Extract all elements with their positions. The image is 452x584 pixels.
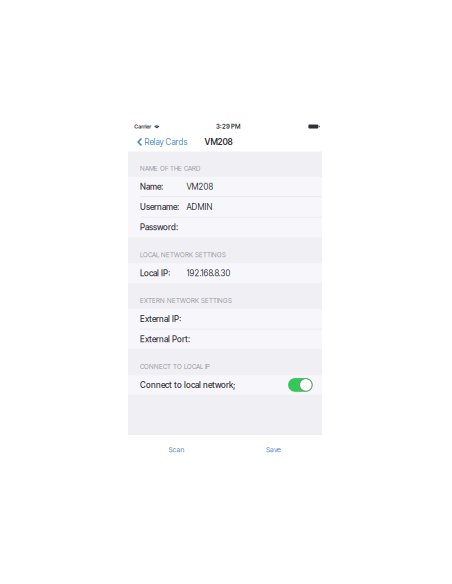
- staticText: External IP:: [140, 314, 181, 324]
- staticText: ADMIN: [187, 202, 213, 212]
- staticText: VM208: [205, 137, 233, 147]
- button[interactable]: Scan: [128, 435, 225, 464]
- staticText: Relay Cards: [145, 137, 188, 147]
- staticText: EXTERN NETWORK SETTINGS: [140, 297, 232, 305]
- button[interactable]: Connect to local network: [288, 378, 313, 392]
- staticText: 3:29 PM: [216, 123, 240, 130]
- button[interactable]: Save: [225, 435, 322, 464]
- staticText: 192.168.8.30: [187, 268, 231, 278]
- button[interactable]: Relay Cards: [128, 134, 190, 150]
- staticText: Local IP:: [140, 268, 170, 278]
- staticText: CONNECT TO LOCAL IP: [140, 363, 210, 370]
- staticText: VM208: [187, 182, 214, 192]
- staticText: Password:: [140, 222, 178, 232]
- staticText: Name:: [140, 182, 163, 192]
- staticText: External Port:: [140, 334, 190, 344]
- staticText: Carrier: [134, 123, 151, 130]
- staticText: Username:: [140, 202, 179, 212]
- staticText: Scan: [168, 445, 184, 454]
- staticText: LOCAL NETWORK SETTINGS: [140, 251, 226, 259]
- staticText: Connect to local network;: [140, 380, 235, 390]
- staticText: NAME OF THE CARD: [140, 165, 200, 172]
- staticText: Save: [266, 445, 281, 454]
